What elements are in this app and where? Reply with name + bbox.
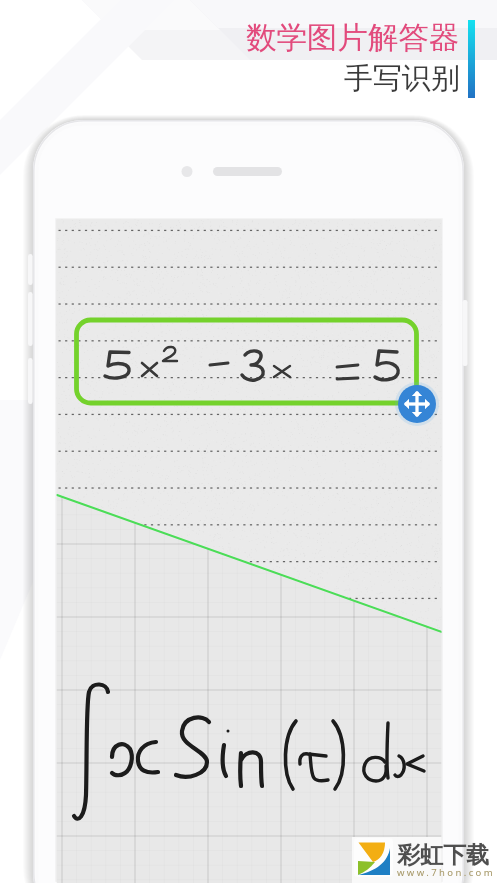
button[interactable]: Math photo solver screenshot: [0, 0, 497, 883]
